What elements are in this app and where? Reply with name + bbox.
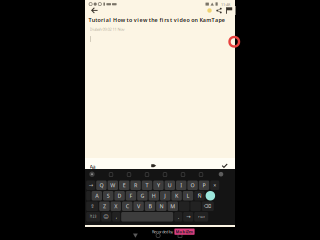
staticText: Tutorial How to view the first video on … — [88, 16, 225, 23]
button[interactable]: W — [108, 180, 118, 190]
button[interactable]: Note colour — [204, 6, 215, 15]
staticText: J — [164, 192, 166, 199]
button[interactable]: Keyboard tool — [162, 172, 168, 178]
button[interactable]: A — [92, 191, 102, 200]
staticText: F — [129, 192, 132, 199]
staticText: G — [140, 192, 144, 199]
button[interactable]: . — [174, 212, 182, 221]
staticText: Z — [103, 203, 106, 210]
button[interactable]: R — [130, 180, 141, 190]
button[interactable]: T — [142, 180, 152, 190]
staticText: O — [191, 182, 195, 189]
button[interactable]: L — [183, 191, 193, 200]
staticText: 11:48 — [221, 2, 230, 7]
button[interactable]: Z — [99, 201, 110, 211]
button[interactable]: Voice input — [206, 191, 215, 200]
button[interactable]: Ñ — [194, 191, 205, 200]
staticText: W — [110, 182, 115, 189]
button[interactable]: Back — [133, 233, 138, 238]
button[interactable]: X — [111, 201, 121, 211]
staticText: C — [126, 203, 129, 210]
staticText: Aa — [89, 163, 95, 170]
button[interactable]: Text formatting — [88, 161, 100, 171]
button[interactable]: × — [210, 180, 219, 190]
staticText: L — [186, 192, 189, 199]
staticText: U — [168, 182, 172, 189]
staticText: M — [170, 203, 175, 210]
button[interactable]: S — [103, 191, 113, 200]
button[interactable]: D — [114, 191, 125, 200]
staticText: R — [134, 182, 137, 189]
button[interactable]: space — [121, 212, 173, 221]
button[interactable]: N — [156, 201, 167, 211]
button[interactable]: Keyboard tool — [144, 172, 150, 178]
button[interactable]: ?123 — [86, 212, 100, 221]
button[interactable]: F — [126, 191, 136, 200]
button[interactable]: Keyboard tool — [198, 172, 204, 178]
staticText: → — [186, 214, 190, 220]
staticText: MobiZen — [175, 229, 193, 234]
button[interactable]: Keyboard tool — [126, 172, 132, 178]
staticText: I — [180, 182, 182, 189]
button[interactable]: Done — [219, 161, 231, 171]
staticText: . — [178, 213, 179, 220]
button[interactable]: K — [171, 191, 182, 200]
button[interactable]: B — [145, 201, 155, 211]
button[interactable]: More options — [223, 6, 235, 15]
staticText: × — [213, 182, 216, 189]
staticText: ⇧ — [90, 203, 94, 209]
button[interactable]: M — [168, 201, 178, 211]
button[interactable]: J — [160, 191, 170, 200]
staticText: V — [137, 203, 140, 210]
button[interactable]: Keyboard tool — [180, 172, 186, 178]
button[interactable]: Keyboard tool — [218, 171, 224, 177]
button[interactable]: Home — [156, 233, 160, 238]
button[interactable]: Recents — [178, 233, 182, 237]
staticText: Recorded by — [152, 229, 173, 234]
button[interactable]: Share — [213, 6, 224, 15]
staticText: B — [148, 203, 151, 210]
staticText: , — [116, 213, 117, 220]
staticText: E — [123, 182, 126, 189]
staticText: N — [159, 203, 163, 210]
staticText: H — [152, 192, 156, 199]
staticText: P — [202, 182, 205, 189]
staticText: X — [114, 203, 117, 210]
staticText: → — [89, 182, 93, 188]
staticText: Y — [157, 182, 160, 189]
button[interactable]: → — [183, 212, 193, 221]
staticText: Q — [99, 182, 103, 189]
button[interactable]: , — [112, 212, 120, 221]
staticText: D — [118, 192, 122, 199]
button[interactable]: → — [86, 180, 95, 190]
button[interactable]: O — [187, 180, 198, 190]
staticText: ☺ — [103, 214, 109, 220]
button[interactable]: H — [149, 191, 159, 200]
button[interactable]: Keyboard tool — [108, 172, 114, 178]
button[interactable]: I — [176, 180, 186, 190]
button[interactable]: Keyboard tool — [89, 171, 95, 177]
button[interactable]: Back — [88, 6, 101, 15]
staticText: PLUS — [198, 215, 204, 218]
button[interactable]: E — [119, 180, 129, 190]
button[interactable]: ☺ — [101, 212, 111, 221]
button[interactable]: C — [122, 201, 132, 211]
button[interactable]: Insert — [150, 161, 160, 171]
staticText: ?123 — [90, 215, 97, 218]
staticText: Diubah 09.02 11 Nov — [89, 26, 124, 32]
staticText: T — [145, 182, 148, 189]
button[interactable]: ⌫ — [202, 201, 214, 211]
button[interactable]: P — [199, 180, 209, 190]
button[interactable]: U — [165, 180, 175, 190]
button[interactable]: ⇧ — [86, 201, 98, 211]
button[interactable]: Q — [96, 180, 107, 190]
button[interactable]: V — [133, 201, 144, 211]
button[interactable]: PLUS — [194, 212, 208, 221]
staticText: S — [107, 192, 110, 199]
staticText: Ñ — [197, 192, 201, 199]
button[interactable]: G — [137, 191, 148, 200]
button[interactable]: Y — [153, 180, 164, 190]
